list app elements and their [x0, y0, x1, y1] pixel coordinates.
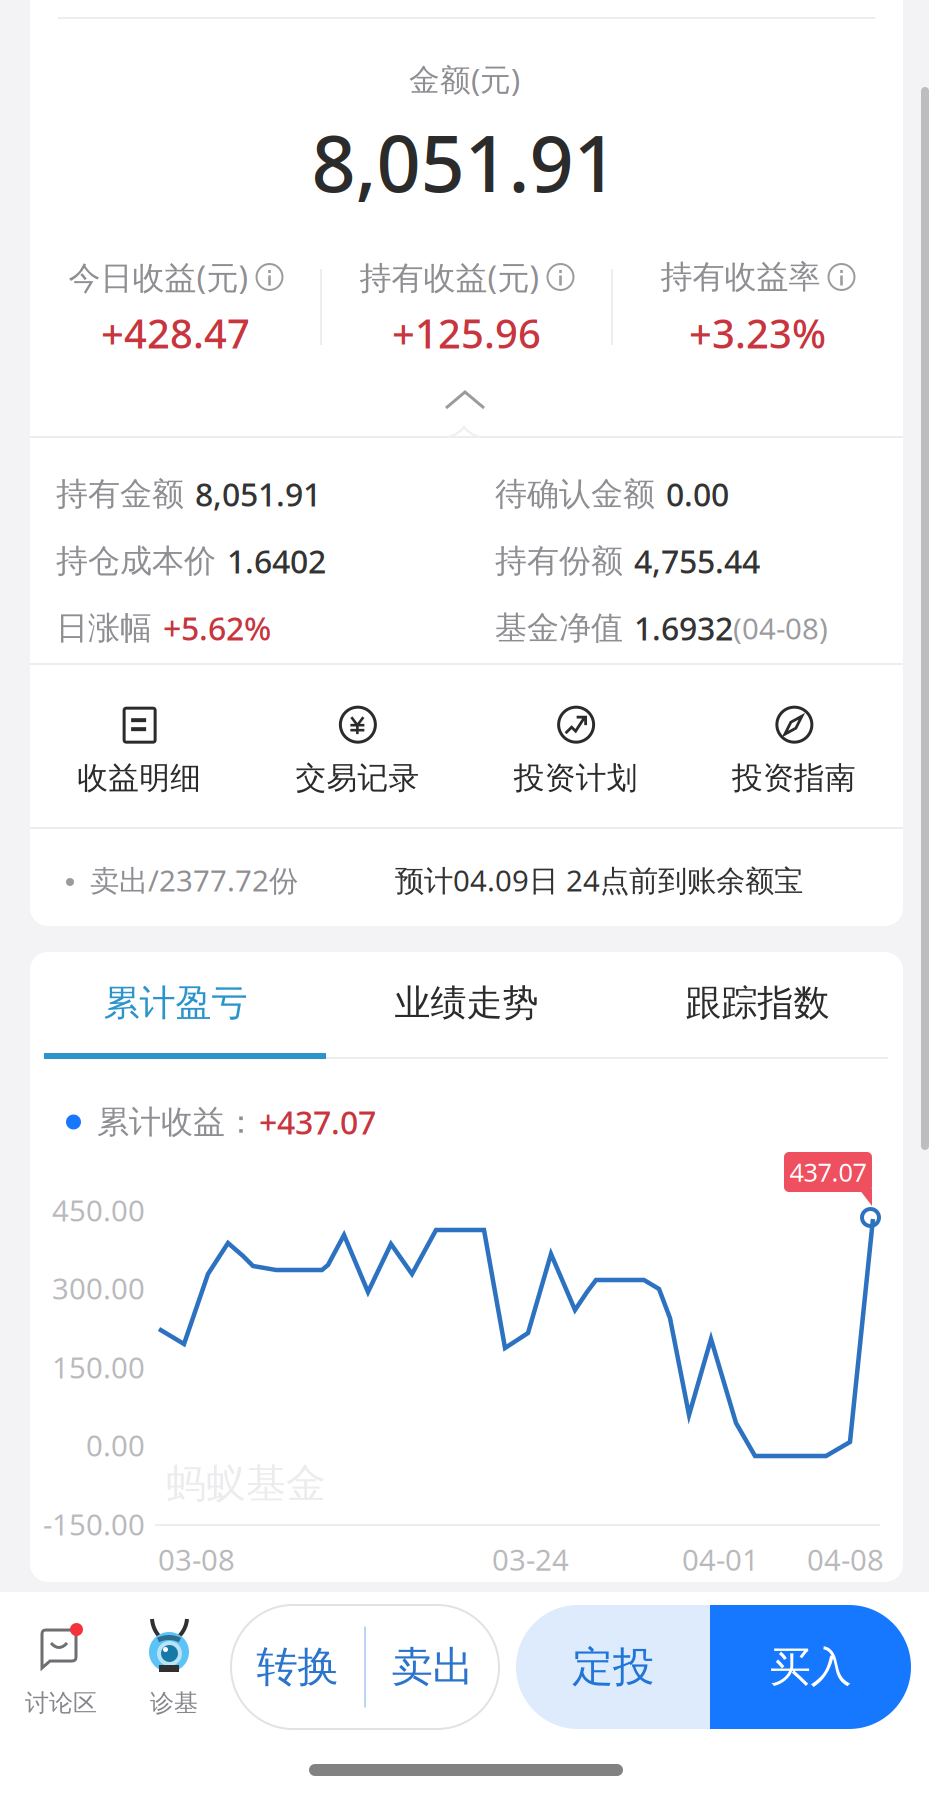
staticText: +428.47 — [101, 306, 250, 359]
button[interactable]: 诊基 — [118, 1600, 230, 1730]
staticText: 金额(元) — [409, 59, 520, 99]
staticText: 卖出/2377.72份 — [90, 860, 298, 899]
staticText: 业绩走势 — [394, 981, 538, 1025]
button[interactable]: 跟踪指数 — [612, 971, 903, 1035]
staticText: 0.00 — [86, 1425, 145, 1464]
staticText: 持有金额 — [56, 474, 184, 514]
staticText: 4,755.44 — [634, 540, 760, 582]
staticText: 0.00 — [666, 473, 729, 515]
button[interactable]: 累计盈亏 — [30, 971, 321, 1035]
staticText: 300.00 — [52, 1268, 145, 1307]
staticText: 03-24 — [492, 1540, 569, 1579]
staticText: 日涨幅 — [56, 608, 152, 648]
button[interactable]: 定投 — [516, 1605, 710, 1729]
staticText: 买入 — [769, 1642, 851, 1692]
staticText: 基金净值 — [495, 608, 623, 648]
button[interactable]: 业绩走势 — [321, 971, 612, 1035]
staticText: 收益明细 — [77, 759, 201, 797]
staticText: 累计盈亏 — [103, 981, 247, 1025]
staticText: 8,051.91 — [195, 473, 321, 515]
staticText: +437.07 — [259, 1101, 376, 1143]
staticText: 1.6402 — [227, 540, 326, 582]
staticText: 03-08 — [158, 1540, 235, 1579]
staticText: 预计04.09日 24点前到账余额宝 — [395, 860, 803, 899]
staticText: 持仓成本价 — [56, 541, 216, 581]
staticText: 04-08 — [807, 1540, 884, 1579]
button[interactable]: 交易记录 — [248, 698, 466, 806]
staticText: +5.62% — [163, 607, 271, 649]
staticText: 转换 — [256, 1642, 338, 1692]
staticText: 待确认金额 — [495, 474, 655, 514]
staticText: 150.00 — [52, 1347, 145, 1386]
staticText: 今日收益(元) — [68, 256, 248, 298]
staticText: (04-08) — [733, 608, 828, 647]
staticText: 450.00 — [52, 1190, 145, 1229]
staticText: 持有收益率 — [660, 257, 820, 297]
staticText: 定投 — [572, 1642, 654, 1692]
button[interactable]: 买入 — [710, 1605, 911, 1729]
staticText: 437.07 — [789, 1155, 866, 1189]
staticText: 04-01 — [682, 1540, 759, 1579]
button[interactable]: 卖出 — [366, 1605, 499, 1729]
button[interactable]: 收益明细 — [30, 698, 248, 806]
staticText: 诊基 — [150, 1688, 198, 1718]
staticText: 讨论区 — [25, 1688, 97, 1718]
button[interactable]: 投资指南 — [685, 698, 903, 806]
staticText: 累计收益： — [97, 1102, 257, 1142]
staticText: 持有收益(元) — [359, 256, 539, 298]
staticText: 1.6932 — [634, 607, 733, 649]
staticText: +125.96 — [392, 306, 541, 359]
button[interactable]: 讨论区 — [5, 1600, 117, 1730]
button[interactable]: 投资计划 — [466, 698, 685, 806]
staticText: 卖出 — [391, 1642, 473, 1692]
staticText: 投资计划 — [514, 759, 638, 797]
staticText: 跟踪指数 — [685, 981, 829, 1025]
staticText: 交易记录 — [295, 759, 419, 797]
staticText: 投资指南 — [732, 759, 856, 797]
staticText: 持有份额 — [495, 541, 623, 581]
staticText: 蚂蚁基金 — [166, 1459, 326, 1508]
staticText: 8,051.91 — [311, 111, 617, 213]
staticText: -150.00 — [43, 1504, 145, 1543]
staticText: +3.23% — [689, 306, 826, 359]
button[interactable]: 转换 — [231, 1605, 364, 1729]
